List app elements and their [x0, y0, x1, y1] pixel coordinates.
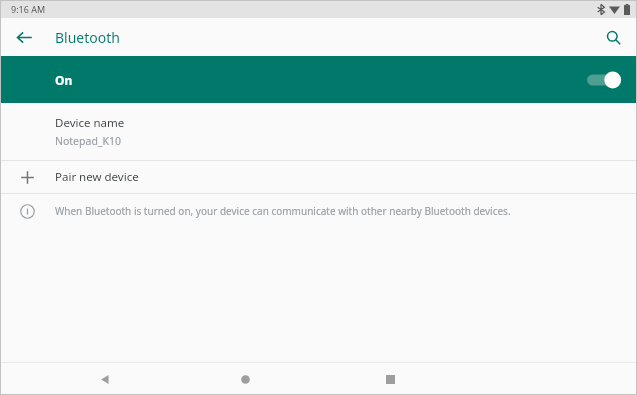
staticText: On — [55, 72, 73, 88]
button[interactable]: Recent apps — [373, 363, 407, 395]
staticText: 9:16 AM — [11, 3, 46, 15]
button[interactable]: Pair new device — [0, 161, 637, 193]
staticText: Device name — [55, 115, 125, 131]
staticText: Notepad_K10 — [55, 134, 122, 148]
button[interactable]: On — [0, 56, 637, 103]
staticText: When Bluetooth is turned on, your device… — [55, 204, 511, 218]
button[interactable]: Search — [597, 21, 629, 53]
button[interactable]: Device name — [0, 103, 637, 160]
staticText: Bluetooth — [55, 28, 120, 47]
button[interactable]: Back — [8, 21, 40, 53]
button[interactable]: Home — [228, 363, 262, 395]
button[interactable]: Back — [88, 363, 122, 395]
staticText: Pair new device — [55, 169, 139, 185]
button[interactable]: Bluetooth toggle — [585, 66, 627, 94]
